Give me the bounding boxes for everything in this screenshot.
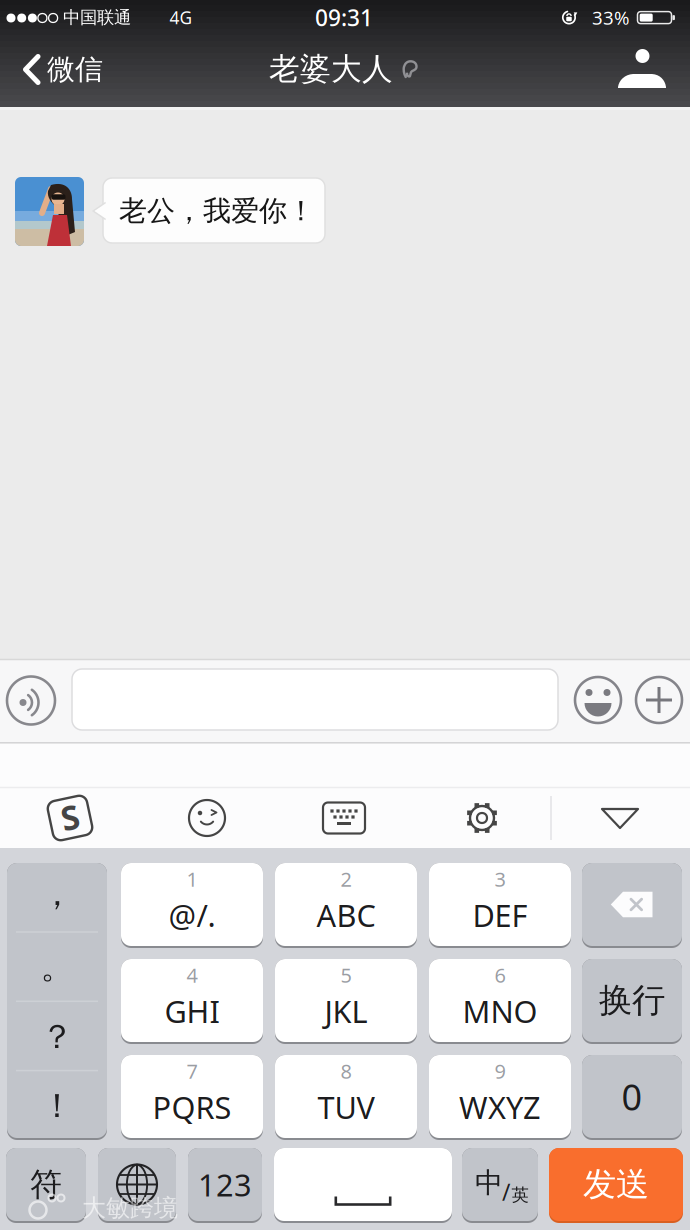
button[interactable]: 。 xyxy=(9,935,105,999)
button[interactable]: 切换输入法 xyxy=(98,1148,176,1223)
button[interactable]: 123 xyxy=(188,1148,262,1223)
staticText: 0 xyxy=(621,1073,642,1120)
staticText: @/. xyxy=(168,895,215,935)
staticText: 中 xyxy=(475,1166,503,1200)
staticText: 2 xyxy=(340,866,351,892)
button[interactable]: 符 xyxy=(6,1148,86,1223)
button[interactable]: 8 xyxy=(275,1055,417,1140)
button[interactable]: 返回微信 xyxy=(23,42,133,96)
button[interactable]: ， xyxy=(9,862,105,926)
staticText: 大敏跨境 xyxy=(82,1193,178,1223)
button[interactable]: 收起键盘 xyxy=(597,803,643,833)
staticText: ABC xyxy=(316,895,375,935)
button[interactable]: ？ xyxy=(9,1005,105,1069)
button[interactable]: 1 xyxy=(121,863,263,948)
button[interactable]: 换行 xyxy=(582,959,682,1044)
staticText: 英 xyxy=(511,1184,528,1206)
staticText: JKL xyxy=(324,991,367,1031)
staticText: 7 xyxy=(186,1058,197,1084)
button[interactable]: 键盘切换 xyxy=(318,798,370,838)
button[interactable]: 2 xyxy=(275,863,417,948)
staticText: 09:31 xyxy=(315,2,373,32)
button[interactable]: ！ xyxy=(9,1074,105,1138)
staticText: TUV xyxy=(317,1087,374,1127)
staticText: ！ xyxy=(40,1085,73,1126)
staticText: 老公，我爱你！ xyxy=(119,194,315,228)
button[interactable]: 更多功能 xyxy=(635,676,683,724)
button[interactable]: 空格 xyxy=(274,1148,452,1223)
staticText: 4 xyxy=(186,962,197,988)
button[interactable]: 4 xyxy=(121,959,263,1044)
staticText: ， xyxy=(40,873,73,914)
staticText: 发送 xyxy=(583,1164,649,1205)
staticText: WXYZ xyxy=(459,1087,541,1127)
staticText: S xyxy=(61,795,79,839)
staticText: MNO xyxy=(462,991,537,1031)
staticText: 3 xyxy=(494,866,505,892)
button[interactable]: 表情 xyxy=(574,676,622,724)
staticText: 符 xyxy=(30,1165,62,1204)
staticText: / xyxy=(502,1177,510,1207)
staticText: ？ xyxy=(40,1016,73,1057)
staticText: 9 xyxy=(494,1058,505,1084)
button[interactable]: 9 xyxy=(429,1055,571,1140)
button[interactable]: 删除 xyxy=(582,863,682,948)
staticText: 中国联通 xyxy=(63,7,131,28)
button[interactable]: 7 xyxy=(121,1055,263,1140)
button[interactable]: 中英文切换 xyxy=(462,1148,538,1223)
button[interactable]: 0 xyxy=(582,1055,682,1140)
staticText: 123 xyxy=(198,1164,252,1205)
staticText: 8 xyxy=(340,1058,351,1084)
button[interactable]: 设置 xyxy=(460,796,504,840)
staticText: GHI xyxy=(164,991,219,1031)
staticText: 5 xyxy=(340,962,351,988)
staticText: PQRS xyxy=(152,1087,231,1127)
button[interactable]: 3 xyxy=(429,863,571,948)
staticText: 4G xyxy=(169,6,192,29)
button[interactable]: 发送 xyxy=(549,1148,683,1223)
staticText: 33% xyxy=(592,5,630,30)
staticText: 。 xyxy=(40,946,73,987)
button[interactable]: 表情 xyxy=(185,796,229,840)
button[interactable]: 联系人信息 xyxy=(616,47,668,93)
staticText: 老婆大人 xyxy=(269,50,393,88)
button[interactable]: 5 xyxy=(275,959,417,1044)
staticText: 6 xyxy=(494,962,505,988)
button[interactable]: 输入消息 xyxy=(72,669,558,730)
staticText: 1 xyxy=(186,866,197,892)
button[interactable]: 老婆大人 头像 xyxy=(15,177,84,246)
staticText: 换行 xyxy=(599,980,665,1021)
button[interactable]: 6 xyxy=(429,959,571,1044)
staticText: 微信 xyxy=(47,52,103,87)
button[interactable]: 搜狗输入法 xyxy=(42,791,98,845)
staticText: DEF xyxy=(472,895,527,935)
button[interactable]: 按住说话 xyxy=(6,675,56,725)
